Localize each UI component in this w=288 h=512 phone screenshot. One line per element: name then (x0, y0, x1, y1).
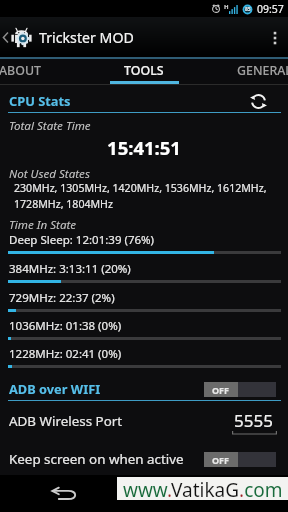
button[interactable]: 729MHz: 22:37 (2%) (0, 290, 288, 319)
staticText: ADB Wireless Port (9, 412, 123, 430)
staticText: 09:57 (257, 2, 284, 16)
button[interactable]: More options (262, 17, 288, 57)
staticText: ABOUT (0, 62, 42, 79)
button[interactable]: ADB Wireless Port (0, 406, 288, 436)
staticText: Time In State (9, 217, 77, 233)
staticText: 15:41:51 (0, 135, 288, 160)
button[interactable]: Navigate up (0, 17, 288, 57)
button[interactable]: Toggle off (204, 452, 276, 467)
staticText: 1036MHz: 01:38 (0%) (9, 318, 122, 334)
button[interactable]: Deep Sleep: 12:01:39 (76%) (0, 232, 288, 261)
button[interactable]: TOOLS (96, 57, 192, 85)
button[interactable]: 1228MHz: 02:41 (0%) (0, 346, 288, 375)
staticText: H (224, 3, 229, 11)
button[interactable]: Refresh (248, 91, 268, 111)
staticText: Not Used States (9, 166, 90, 182)
staticText: OFF (212, 454, 230, 466)
staticText: GENERALS (237, 62, 288, 79)
staticText: ADB over WIFI (9, 380, 101, 397)
staticText: 729MHz: 22:37 (2%) (9, 290, 115, 306)
staticText: 85 (245, 6, 251, 13)
button[interactable]: ABOUT (0, 57, 96, 85)
staticText: TOOLS (124, 62, 164, 79)
staticText: Deep Sleep: 12:01:39 (76%) (9, 232, 155, 248)
button[interactable]: 384MHz: 3:13:11 (20%) (0, 261, 288, 290)
staticText: Total State Time (9, 118, 91, 134)
staticText: Keep screen on when active (9, 450, 184, 468)
staticText: 1228MHz: 02:41 (0%) (9, 346, 122, 362)
button[interactable]: Back (49, 478, 79, 508)
staticText: 384MHz: 3:13:11 (20%) (9, 261, 131, 277)
button[interactable]: Keep screen on when active (0, 444, 288, 474)
staticText: CPU Stats (9, 92, 71, 109)
staticText: 5555 (234, 409, 273, 432)
staticText: 230MHz, 1305MHz, 1420MHz, 1536MHz, 1612M… (14, 181, 288, 211)
staticText: OFF (212, 384, 230, 396)
button[interactable]: 1036MHz: 01:38 (0%) (0, 318, 288, 347)
button[interactable]: Toggle off (204, 382, 276, 397)
staticText: Trickster MOD (39, 28, 134, 47)
button[interactable]: GENERALS (192, 57, 288, 85)
staticText: www.VatikaG.com (123, 477, 283, 500)
